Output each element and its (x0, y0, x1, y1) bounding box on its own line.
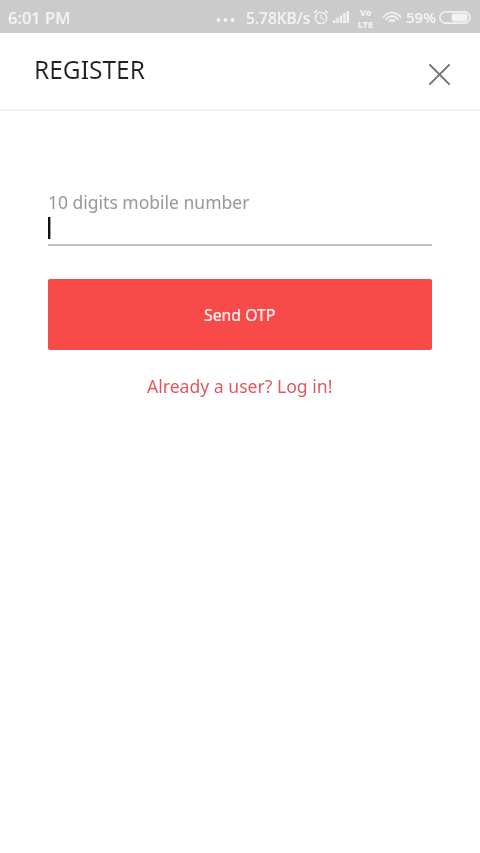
button[interactable]: Already a user? Log in! (48, 350, 432, 422)
staticText: 6:01 PM (8, 6, 71, 28)
staticText: 5.78KB/s (246, 7, 311, 28)
staticText: Already a user? Log in! (147, 374, 333, 398)
staticText: 59% (406, 7, 436, 27)
staticText: Vo (360, 6, 372, 18)
staticText: REGISTER (34, 53, 145, 86)
button[interactable]: 10 digits mobile number input (48, 215, 432, 246)
staticText: 10 digits mobile number (48, 190, 250, 214)
staticText: LTE (358, 18, 374, 28)
staticText: Send OTP (204, 304, 276, 326)
button[interactable]: Send OTP (48, 279, 432, 350)
button[interactable]: Close (419, 54, 459, 94)
